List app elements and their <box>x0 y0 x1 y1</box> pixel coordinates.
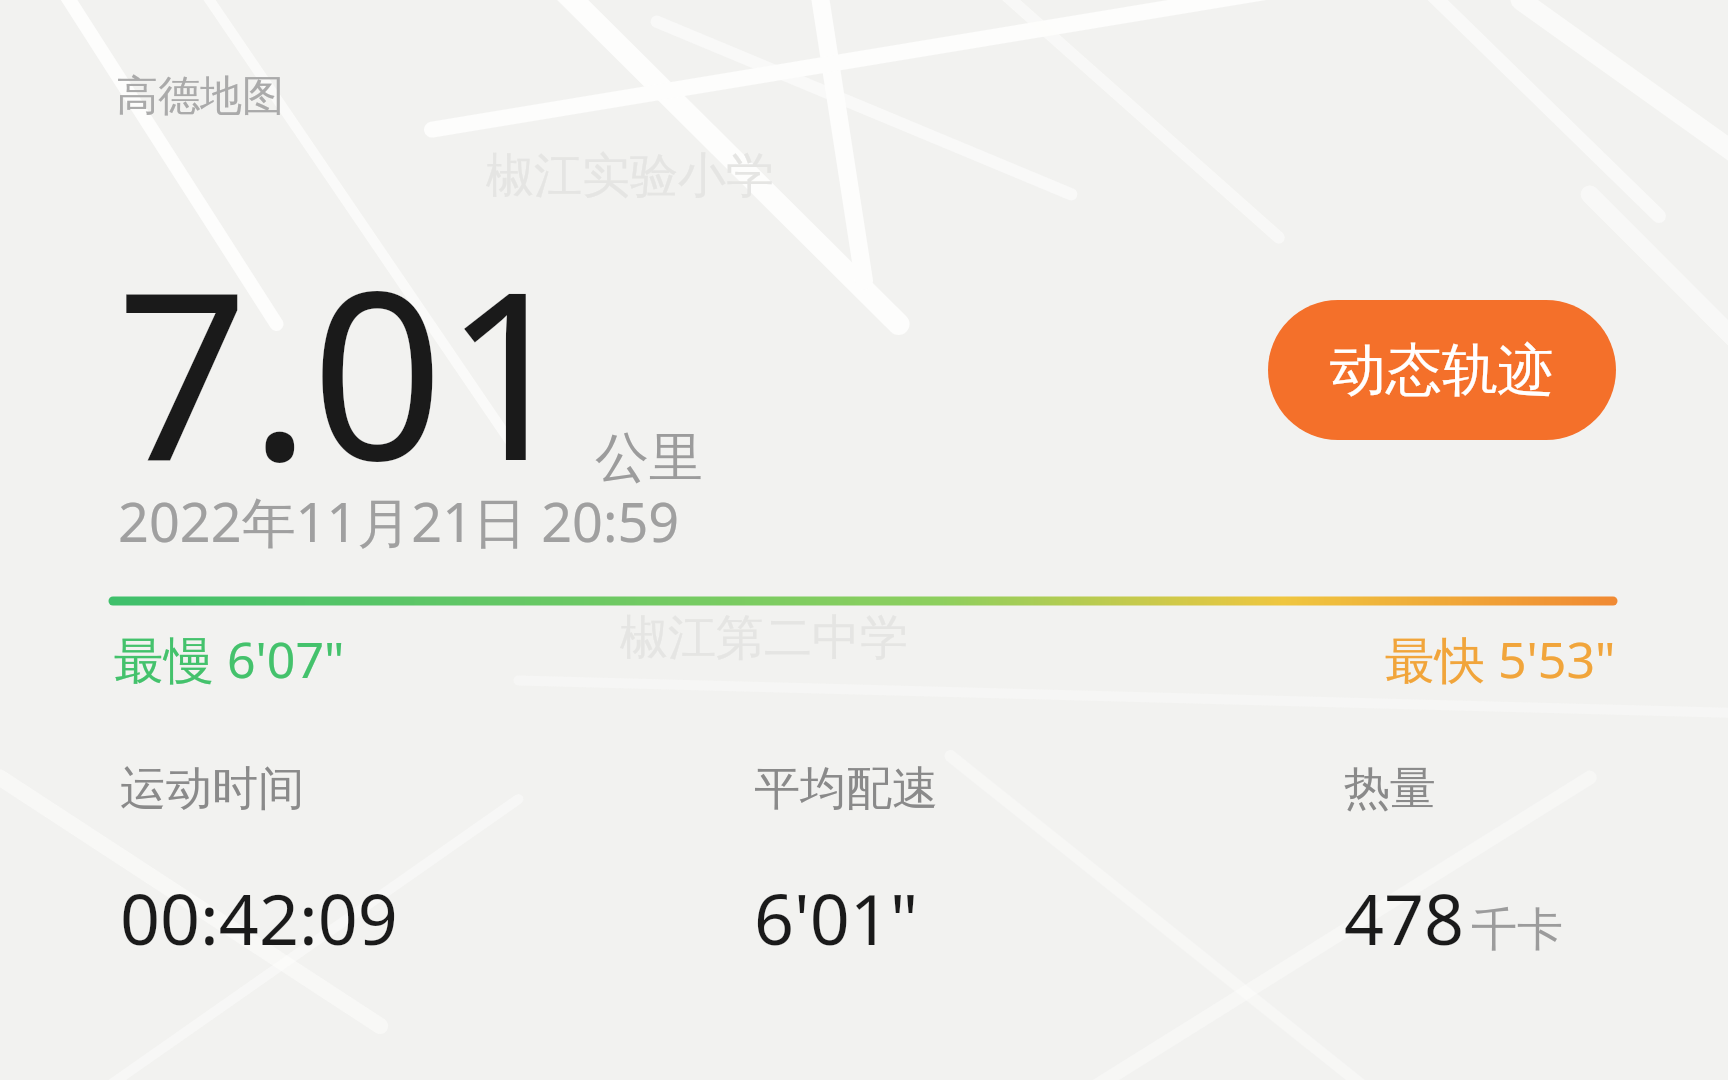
staticText: 椒江实验小学 <box>486 146 774 206</box>
staticText: 动态轨迹 <box>1330 335 1554 406</box>
staticText: 7.01 <box>116 212 577 528</box>
button[interactable]: 热量 <box>1340 756 1567 969</box>
staticText: 最慢 6'07" <box>114 625 345 693</box>
staticText: 公里 <box>595 424 703 492</box>
staticText: 00:42:09 <box>120 870 398 965</box>
button[interactable]: 动态轨迹 <box>1268 300 1616 440</box>
staticText: 平均配速 <box>754 760 938 818</box>
staticText: 高德地图 <box>116 70 284 123</box>
staticText: 千卡 <box>1471 901 1563 959</box>
staticText: 最快 5'53" <box>1385 625 1616 693</box>
staticText: 478 <box>1344 870 1465 965</box>
staticText: 2022年11月21日 20:59 <box>118 484 680 558</box>
staticText: 运动时间 <box>120 760 304 818</box>
staticText: 6'01" <box>754 870 919 965</box>
staticText: 热量 <box>1344 760 1436 818</box>
button[interactable]: 平均配速 <box>750 756 942 969</box>
button[interactable]: 运动时间 <box>116 756 402 969</box>
staticText: 椒江第二中学 <box>620 608 908 668</box>
